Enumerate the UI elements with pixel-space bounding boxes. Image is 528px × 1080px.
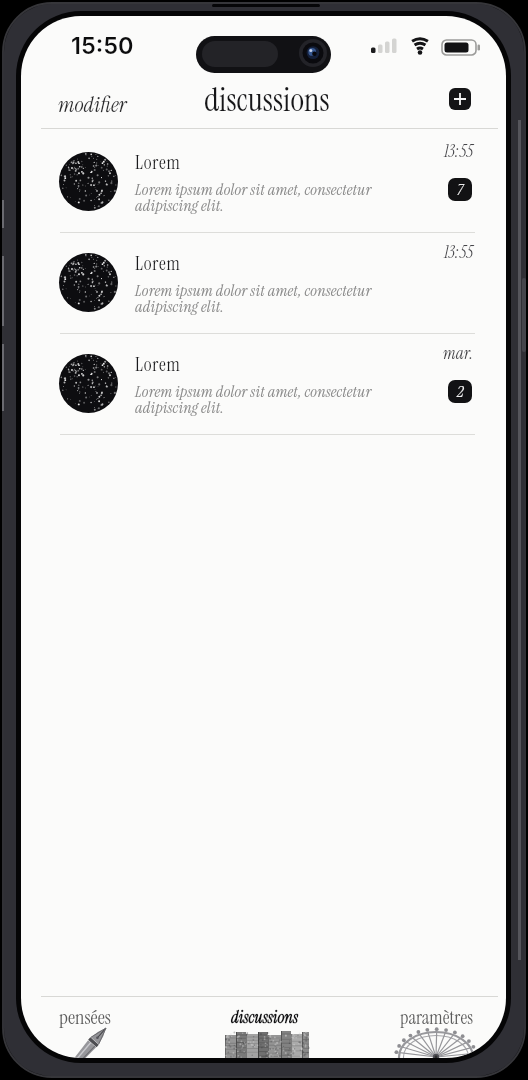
staticText: Lorem ipsum dolor sit amet, consectetur …	[135, 179, 372, 216]
staticText: 2	[457, 381, 464, 402]
staticText: 13:55	[444, 241, 473, 263]
button[interactable]	[41, 233, 498, 333]
button[interactable]: pensées	[30, 1004, 140, 1058]
button[interactable]	[41, 132, 498, 232]
staticText: Lorem ipsum dolor sit amet, consectetur …	[135, 280, 372, 317]
button[interactable]: modifier	[51, 87, 157, 121]
button[interactable]	[449, 88, 471, 110]
button[interactable]: discussions	[204, 1002, 324, 1058]
staticText: 7	[457, 179, 463, 200]
staticText: 15:50	[71, 31, 134, 59]
button[interactable]	[41, 334, 498, 434]
staticText: 13:55	[444, 140, 473, 162]
staticText: discussions	[204, 78, 330, 121]
staticText: paramètres	[400, 1005, 473, 1030]
staticText: modifier	[58, 90, 127, 119]
staticText: Lorem	[135, 352, 181, 377]
staticText: pensées	[59, 1004, 111, 1030]
staticText: mar.	[443, 342, 473, 364]
staticText: discussions	[231, 1007, 298, 1028]
staticText: Lorem ipsum dolor sit amet, consectetur …	[135, 381, 372, 418]
staticText: Lorem	[135, 251, 181, 276]
staticText: Lorem	[135, 150, 181, 175]
button[interactable]: paramètres	[376, 1004, 496, 1058]
